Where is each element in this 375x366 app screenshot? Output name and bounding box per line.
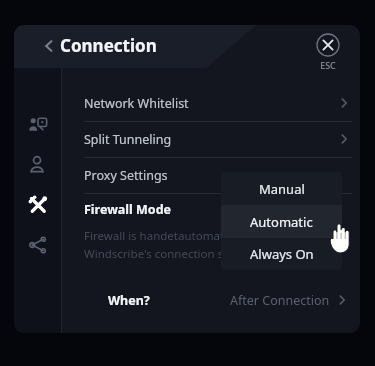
staticText: Firewall Mode: [84, 201, 172, 218]
button[interactable]: Close: [316, 33, 340, 71]
staticText: Split Tunneling: [84, 131, 172, 148]
staticText: ESC: [320, 59, 336, 71]
staticText: When?: [108, 292, 150, 309]
button[interactable]: When?: [62, 283, 360, 317]
button[interactable]: Network Whitelist: [62, 85, 360, 121]
staticText: Connection: [60, 34, 157, 57]
button[interactable]: Automatic: [221, 205, 342, 238]
staticText: After Connection: [230, 292, 330, 309]
staticText: Automatic: [250, 213, 313, 231]
staticText: Always On: [250, 245, 314, 263]
button[interactable]: Proxy Settings: [62, 157, 360, 193]
button[interactable]: Always On: [221, 238, 342, 270]
button[interactable]: Firewall Mode: [62, 193, 360, 225]
button[interactable]: Back: [36, 35, 58, 57]
button[interactable]: Settings section: [26, 233, 50, 257]
button[interactable]: Manual: [221, 172, 342, 205]
staticText: Proxy Settings: [84, 167, 168, 184]
staticText: Windscribe's connection st: [84, 246, 228, 262]
button[interactable]: Settings section: [26, 193, 50, 217]
staticText: Manual: [259, 180, 305, 198]
button[interactable]: Settings section: [26, 113, 50, 137]
staticText: Firewall is handetautomat: [84, 228, 224, 244]
button[interactable]: Split Tunneling: [62, 121, 360, 157]
button[interactable]: Settings section: [26, 153, 50, 177]
staticText: Network Whitelist: [84, 95, 189, 112]
